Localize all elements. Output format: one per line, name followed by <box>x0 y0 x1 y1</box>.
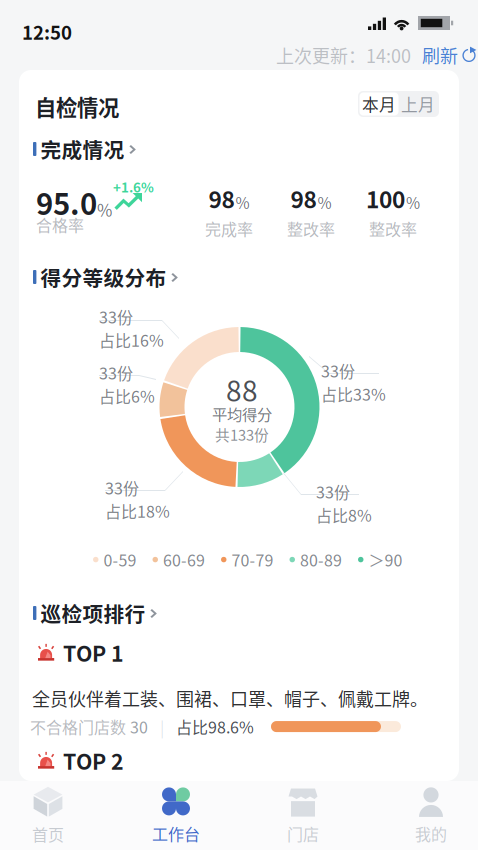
staticText: +1.6% <box>113 177 154 196</box>
staticText: 70-79 <box>231 548 273 571</box>
staticText: 33份 <box>99 305 133 328</box>
staticText: 33份 <box>99 361 133 384</box>
staticText: 0-59 <box>103 548 136 571</box>
staticText: 占比6% <box>99 384 155 407</box>
button[interactable]: 首页 <box>0 786 104 846</box>
staticText: TOP 2 <box>63 745 124 776</box>
staticText: 占比18% <box>105 499 170 522</box>
staticText: 98 <box>208 182 234 215</box>
staticText: 占比16% <box>99 328 164 351</box>
staticText: 80-89 <box>300 548 342 571</box>
staticText: 60-69 <box>163 548 205 571</box>
staticText: 占比8% <box>316 503 372 526</box>
staticText: ＞90 <box>368 548 402 571</box>
staticText: 上月 <box>401 92 435 116</box>
staticText: % <box>235 191 249 213</box>
staticText: 平均得分 <box>212 402 272 425</box>
staticText: 98 <box>290 182 316 215</box>
staticText: 33份 <box>321 359 355 382</box>
staticText: % <box>406 191 420 213</box>
staticText: TOP 1 <box>63 637 124 668</box>
button[interactable]: 上月 <box>398 92 437 115</box>
staticText: 整改率 <box>287 217 335 240</box>
staticText: 刷新 <box>422 42 458 68</box>
staticText: 上次更新： <box>276 42 366 68</box>
staticText: 门店 <box>287 822 319 845</box>
staticText: 12:50 <box>22 18 72 45</box>
staticText: 30 <box>126 715 148 738</box>
staticText: 自检情况 <box>35 91 119 122</box>
staticText: 合格率 <box>36 213 84 236</box>
staticText: % <box>97 197 112 221</box>
staticText: 整改率 <box>369 217 417 240</box>
staticText: 共133份 <box>215 424 269 445</box>
staticText: 不合格门店数 <box>30 715 126 738</box>
button[interactable]: 刷新 <box>411 42 477 68</box>
staticText: 得分等级分布 <box>40 262 166 292</box>
staticText: 100 <box>366 182 405 215</box>
button[interactable]: 工作台 <box>120 786 232 846</box>
staticText: | <box>148 715 176 738</box>
staticText: 占比98.6% <box>176 715 254 738</box>
staticText: 33份 <box>105 476 139 499</box>
staticText: 本月 <box>362 92 396 116</box>
button[interactable]: 本月 <box>359 92 398 115</box>
staticText: 我的 <box>415 822 447 845</box>
staticText: 88 <box>226 369 258 409</box>
staticText: 14:00 <box>366 42 411 68</box>
button[interactable]: 我的 <box>375 786 478 846</box>
staticText: 完成率 <box>205 217 253 240</box>
button[interactable]: 得分等级分布 <box>33 266 273 288</box>
staticText: 首页 <box>32 822 64 846</box>
button[interactable]: 门店 <box>247 786 359 846</box>
staticText: 工作台 <box>152 822 200 845</box>
staticText: % <box>317 191 331 213</box>
staticText: 完成情况 <box>40 134 124 164</box>
staticText: 33份 <box>316 480 350 503</box>
staticText: 占比33% <box>321 382 386 405</box>
staticText: 95.0 <box>36 181 97 223</box>
button[interactable]: 巡检项排行 <box>33 602 273 624</box>
staticText: 全员伙伴着工装、围裙、口罩、帽子、佩戴工牌。 <box>32 685 428 711</box>
button[interactable]: 完成情况 <box>33 138 273 160</box>
staticText: 巡检项排行 <box>40 598 145 628</box>
